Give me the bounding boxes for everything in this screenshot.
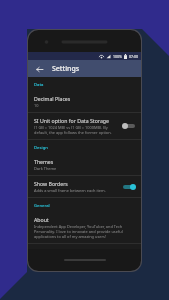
staticText: Data xyxy=(34,82,44,88)
button[interactable]: About xyxy=(28,212,141,243)
staticText: General xyxy=(34,203,50,209)
staticText: Design xyxy=(34,145,48,151)
staticText: SI Unit option for Data Storage xyxy=(34,117,109,124)
staticText: (1 GB = 1024 MB) vs (1 GB = 1000MB). By … xyxy=(34,125,118,135)
button[interactable]: Toggle off xyxy=(122,122,136,130)
staticText: Dark Theme xyxy=(34,166,57,171)
button[interactable]: Decimal Places xyxy=(28,91,141,112)
button[interactable]: SI Unit option for Data Storage xyxy=(28,113,141,139)
staticText: 100% xyxy=(113,54,122,59)
staticText: Themes xyxy=(34,158,54,165)
button[interactable]: Themes xyxy=(28,154,141,175)
staticText: Independent App Developer, YouTuber, and… xyxy=(34,224,136,239)
staticText: Show Borders xyxy=(34,180,68,187)
button[interactable]: Show Borders xyxy=(28,176,141,197)
button[interactable]: Toggle on xyxy=(122,183,136,191)
staticText: About xyxy=(34,216,49,223)
staticText: 07:00 xyxy=(129,54,138,59)
staticText: Adds a small frame between each item. xyxy=(34,188,106,193)
staticText: Decimal Places xyxy=(34,95,71,102)
staticText: Settings xyxy=(52,64,80,74)
staticText: 10 xyxy=(34,103,39,108)
button[interactable]: Back xyxy=(33,63,45,75)
